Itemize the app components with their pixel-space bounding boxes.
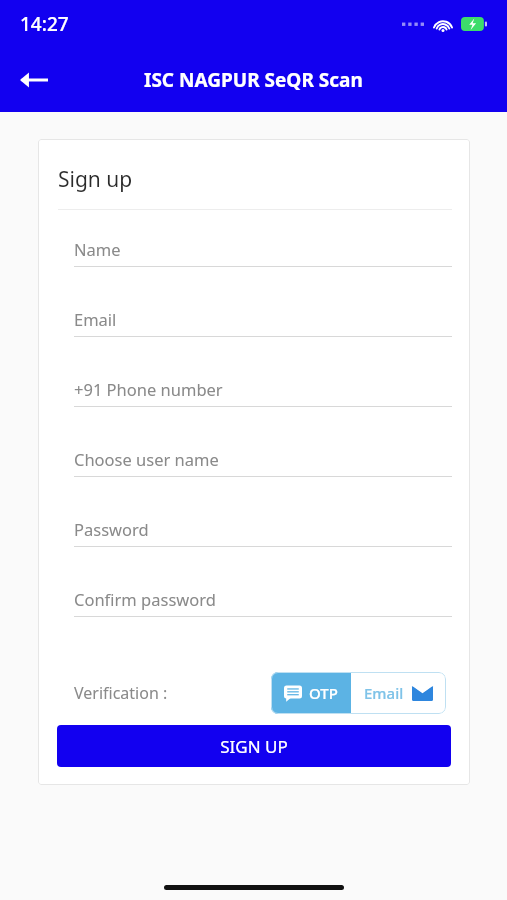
staticText: +91 Phone number <box>74 378 223 400</box>
button[interactable]: Confirm password <box>74 588 452 658</box>
button[interactable]: Email <box>351 672 446 714</box>
staticText: 14:27 <box>20 11 69 37</box>
staticText: Confirm password <box>74 588 216 610</box>
button[interactable]: OTP <box>271 672 351 714</box>
staticText: Email <box>74 308 117 330</box>
button[interactable]: Email <box>74 308 452 378</box>
staticText: Verification : <box>74 682 168 704</box>
button[interactable]: Back <box>10 56 58 104</box>
button[interactable]: Password <box>74 518 452 588</box>
staticText: Sign up <box>58 165 133 194</box>
button[interactable]: +91 Phone number <box>74 378 452 448</box>
button[interactable]: Choose user name <box>74 448 452 518</box>
staticText: ISC NAGPUR SeQR Scan <box>144 67 363 93</box>
staticText: OTP <box>309 683 338 703</box>
button[interactable]: SIGN UP <box>57 725 451 767</box>
staticText: Name <box>74 238 121 260</box>
staticText: Choose user name <box>74 448 219 470</box>
staticText: SIGN UP <box>220 735 288 758</box>
staticText: Password <box>74 518 149 540</box>
button[interactable]: Name <box>74 238 452 308</box>
staticText: Email <box>364 683 404 703</box>
